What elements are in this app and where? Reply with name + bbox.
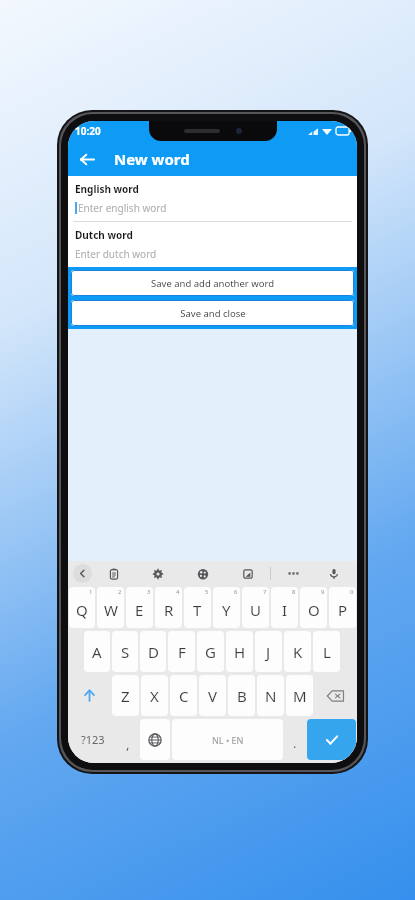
- button[interactable]: X: [141, 675, 168, 716]
- staticText: Save and close: [180, 307, 246, 320]
- staticText: 6: [234, 588, 238, 596]
- staticText: P: [338, 600, 348, 620]
- button[interactable]: 9: [300, 587, 327, 628]
- staticText: D: [148, 642, 159, 662]
- button[interactable]: M: [286, 675, 313, 716]
- staticText: B: [237, 686, 247, 706]
- button[interactable]: 0: [329, 587, 356, 628]
- staticText: A: [92, 642, 102, 662]
- staticText: M: [293, 686, 307, 706]
- button[interactable]: 5: [184, 587, 211, 628]
- staticText: Enter dutch word: [75, 247, 157, 261]
- staticText: 1: [89, 588, 93, 596]
- button[interactable]: More options: [271, 561, 316, 586]
- staticText: S: [121, 642, 130, 662]
- staticText: K: [293, 642, 303, 662]
- button[interactable]: Voice input: [316, 561, 352, 586]
- staticText: W: [104, 600, 118, 620]
- button[interactable]: 6: [213, 587, 240, 628]
- button[interactable]: Clipboard: [92, 561, 136, 586]
- staticText: ?123: [81, 732, 105, 747]
- staticText: NL • EN: [212, 734, 244, 746]
- button[interactable]: Themes: [180, 561, 225, 586]
- staticText: 0: [350, 588, 354, 596]
- staticText: .: [293, 734, 297, 752]
- staticText: New word: [114, 149, 190, 169]
- staticText: R: [164, 600, 174, 620]
- staticText: N: [265, 686, 277, 706]
- button[interactable]: V: [199, 675, 226, 716]
- staticText: L: [323, 642, 331, 662]
- button[interactable]: Period: [285, 719, 305, 760]
- staticText: G: [205, 642, 216, 662]
- staticText: Enter english word: [78, 201, 167, 215]
- button[interactable]: C: [170, 675, 197, 716]
- staticText: Q: [76, 600, 88, 620]
- staticText: 7: [263, 588, 267, 596]
- button[interactable]: S: [112, 631, 138, 672]
- button[interactable]: 3: [126, 587, 153, 628]
- button[interactable]: Done: [307, 719, 356, 760]
- button[interactable]: K: [284, 631, 311, 672]
- button[interactable]: N: [257, 675, 284, 716]
- button[interactable]: Change language: [140, 719, 170, 760]
- button[interactable]: 7: [242, 587, 269, 628]
- staticText: H: [234, 642, 246, 662]
- staticText: U: [250, 600, 261, 620]
- staticText: 2: [118, 588, 122, 596]
- button[interactable]: Keyboard settings: [136, 561, 180, 586]
- button[interactable]: 8: [271, 587, 298, 628]
- staticText: F: [178, 642, 186, 662]
- staticText: ,: [126, 735, 130, 753]
- button[interactable]: ?123: [69, 719, 116, 760]
- staticText: J: [266, 642, 271, 662]
- button[interactable]: Save and close: [71, 300, 354, 326]
- button[interactable]: B: [228, 675, 255, 716]
- button[interactable]: Dutch word: [68, 222, 357, 267]
- staticText: 5: [205, 588, 209, 596]
- button[interactable]: Z: [112, 675, 139, 716]
- button[interactable]: A: [84, 631, 110, 672]
- button[interactable]: 4: [155, 587, 182, 628]
- staticText: English word: [75, 182, 139, 196]
- staticText: 3: [147, 588, 151, 596]
- staticText: Z: [121, 686, 130, 706]
- button[interactable]: F: [168, 631, 195, 672]
- staticText: 8: [292, 588, 296, 596]
- staticText: Save and add another word: [151, 277, 274, 290]
- staticText: O: [308, 600, 320, 620]
- staticText: E: [135, 600, 144, 620]
- staticText: 10:20: [75, 124, 101, 138]
- staticText: C: [179, 686, 189, 706]
- button[interactable]: NL • EN: [172, 719, 283, 760]
- button[interactable]: Shift: [69, 675, 110, 716]
- button[interactable]: G: [197, 631, 224, 672]
- button[interactable]: Backspace: [315, 675, 356, 716]
- button[interactable]: H: [226, 631, 253, 672]
- staticText: 9: [321, 588, 325, 596]
- staticText: X: [150, 686, 159, 706]
- staticText: Y: [222, 600, 231, 620]
- button[interactable]: J: [255, 631, 282, 672]
- button[interactable]: Collapse toolbar: [73, 564, 92, 583]
- button[interactable]: Save and add another word: [71, 270, 354, 296]
- button[interactable]: English word: [68, 176, 357, 221]
- staticText: 4: [176, 588, 180, 596]
- button[interactable]: 2: [97, 587, 124, 628]
- staticText: V: [208, 686, 218, 706]
- button[interactable]: Stickers: [225, 561, 270, 586]
- staticText: T: [193, 600, 202, 620]
- staticText: I: [282, 600, 288, 620]
- button[interactable]: 1: [69, 587, 95, 628]
- button[interactable]: Comma: [118, 719, 138, 760]
- button[interactable]: Back: [72, 144, 102, 174]
- button[interactable]: D: [140, 631, 166, 672]
- button[interactable]: L: [313, 631, 340, 672]
- staticText: Dutch word: [75, 228, 133, 242]
